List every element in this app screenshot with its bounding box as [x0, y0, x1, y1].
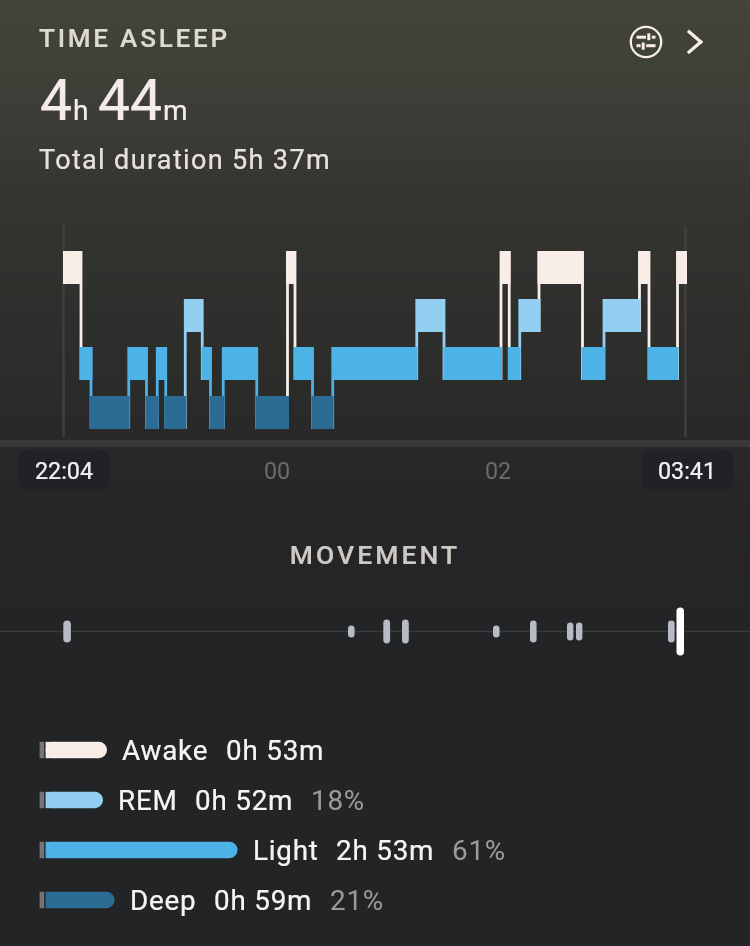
staticText: 22:04 — [35, 457, 94, 484]
button[interactable]: Awake — [0, 725, 750, 775]
staticText: m — [163, 94, 188, 127]
staticText: 21% — [330, 884, 385, 917]
staticText: 0h 59m — [214, 884, 313, 917]
staticText: 03:41 — [658, 457, 717, 484]
staticText: 44 — [98, 67, 163, 134]
staticText: 00 — [264, 457, 291, 484]
button[interactable]: 4 — [40, 67, 188, 134]
staticText: 0h 53m — [226, 734, 325, 767]
staticText: Deep — [130, 884, 197, 917]
button[interactable]: REM — [0, 775, 750, 825]
staticText: 61% — [452, 834, 507, 867]
button[interactable]: Light — [0, 825, 750, 875]
staticText: 2h 53m — [336, 834, 435, 867]
staticText: 02 — [485, 457, 512, 484]
staticText: REM — [118, 784, 178, 817]
staticText: 4 — [40, 67, 73, 134]
button[interactable]: Adjust sleep stages — [620, 16, 672, 68]
staticText: Awake — [122, 734, 209, 767]
button[interactable]: TIME ASLEEP — [39, 23, 230, 54]
staticText: TIME ASLEEP — [39, 23, 230, 54]
staticText: h — [73, 94, 89, 127]
staticText: Total duration 5h 37m — [39, 144, 331, 176]
staticText: 0h 52m — [195, 784, 294, 817]
button[interactable]: 03:41 — [641, 449, 733, 491]
button[interactable]: Deep — [0, 875, 750, 925]
button[interactable]: 22:04 — [18, 449, 110, 491]
staticText: MOVEMENT — [0, 539, 750, 570]
staticText: 18% — [311, 784, 366, 817]
staticText: Light — [253, 834, 319, 867]
button[interactable]: Open details — [669, 16, 721, 68]
